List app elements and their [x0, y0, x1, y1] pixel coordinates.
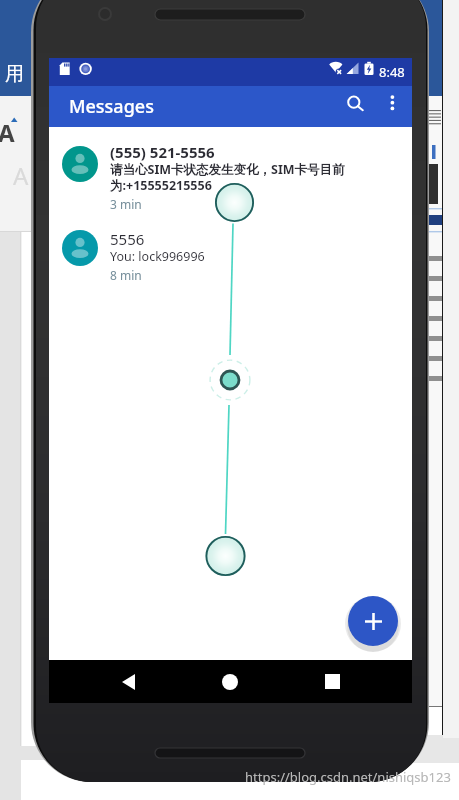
staticText: 8 min	[110, 267, 142, 283]
staticText: 5556	[110, 229, 145, 249]
staticText: You: lock996996	[110, 248, 205, 265]
button[interactable]: (555) 521-5556	[49, 146, 412, 219]
staticText: 8:48	[379, 63, 405, 81]
button[interactable]: Back	[98, 660, 158, 703]
staticText: 请当心SIM卡状态发生变化，SIM卡号目前	[110, 161, 345, 178]
button[interactable]: Home	[200, 660, 260, 703]
button[interactable]: Search	[334, 86, 373, 127]
button[interactable]: Recent apps	[302, 660, 363, 703]
staticText: A	[13, 159, 29, 192]
staticText: 用	[5, 62, 24, 86]
staticText: 为:+15555215556	[110, 177, 212, 194]
staticText: Messages	[69, 94, 154, 119]
staticText: 3 min	[110, 196, 142, 212]
staticText: A	[0, 116, 15, 149]
staticText: https://blog.csdn.net/nishiqsb123	[245, 768, 451, 786]
button[interactable]: 5556	[49, 230, 412, 286]
staticText: (555) 521-5556	[110, 142, 215, 162]
button[interactable]: New conversation	[348, 596, 398, 646]
button[interactable]: More options	[373, 86, 412, 127]
